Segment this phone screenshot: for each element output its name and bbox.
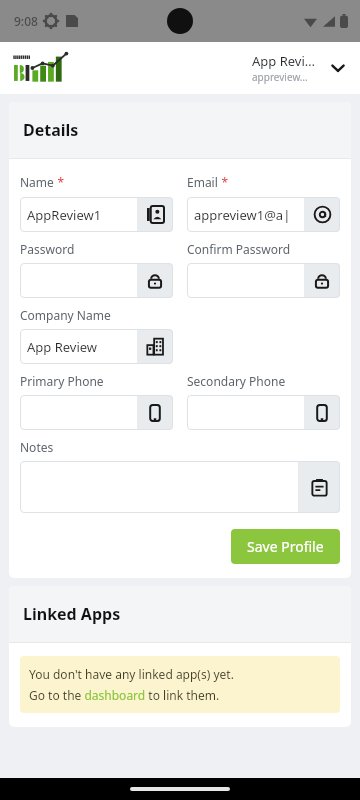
button[interactable]: AppReview1 <box>20 197 173 232</box>
other: Contact <box>147 206 164 223</box>
other: Notes <box>311 479 328 496</box>
staticText: You don't have any linked app(s) yet. <box>29 666 234 682</box>
other: Phone <box>147 405 163 421</box>
button[interactable]: Go to the dashboard to link them. <box>29 687 220 703</box>
button[interactable]: Notes <box>20 461 340 513</box>
staticText: Password <box>20 241 75 257</box>
button[interactable]: Password <box>20 263 173 298</box>
staticText: Primary Phone <box>20 373 104 389</box>
button[interactable]: Phone <box>20 395 173 430</box>
staticText: 9:08 <box>14 13 38 29</box>
button[interactable]: Password <box>187 263 340 298</box>
button[interactable]: App Review <box>20 329 173 364</box>
other: Password <box>314 273 330 289</box>
other: Email <box>314 206 331 223</box>
button[interactable]: appreview1@a| <box>187 197 340 232</box>
staticText: App Review <box>27 338 98 356</box>
staticText: appreview… <box>252 70 308 84</box>
staticText: Details <box>23 119 79 141</box>
staticText: Secondary Phone <box>187 373 286 389</box>
other: Password <box>147 273 163 289</box>
staticText: Confirm Password <box>187 241 291 257</box>
staticText: App Revi… <box>252 52 316 70</box>
staticText: Email * <box>187 172 229 191</box>
staticText: Save Profile <box>247 537 324 556</box>
button[interactable] <box>10 47 82 89</box>
staticText: appreview1@a| <box>194 206 291 224</box>
button[interactable]: App Revi… <box>246 52 350 84</box>
staticText: Name * <box>20 172 65 191</box>
staticText: Notes <box>20 439 54 455</box>
other: Company <box>147 338 164 355</box>
other: Phone <box>314 405 330 421</box>
staticText: AppReview1 <box>27 206 102 224</box>
staticText: Company Name <box>20 307 111 323</box>
staticText: Linked Apps <box>23 603 121 625</box>
button[interactable]: Save Profile <box>231 529 340 564</box>
button[interactable]: Phone <box>187 395 340 430</box>
